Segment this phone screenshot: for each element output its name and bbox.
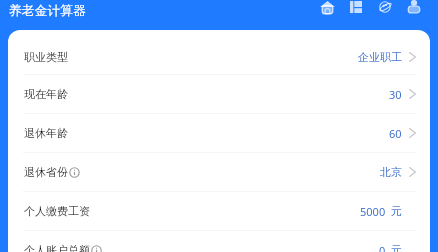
- button[interactable]: Profile: [403, 0, 425, 20]
- staticText: 退休年龄: [24, 126, 68, 140]
- button[interactable]: 职业类型: [8, 40, 430, 75]
- button[interactable]: 个人账户总额: [8, 231, 430, 252]
- button[interactable]: 个人缴费工资: [8, 192, 430, 231]
- staticText: 60: [389, 126, 402, 141]
- staticText: 现在年龄: [24, 87, 68, 101]
- button[interactable]: Home: [316, 0, 338, 20]
- staticText: 养老金计算器: [9, 3, 86, 19]
- staticText: 个人账户总额: [24, 243, 90, 252]
- staticText: 职业类型: [24, 50, 68, 64]
- button[interactable]: Dashboard: [345, 0, 367, 20]
- button[interactable]: 退休省份: [8, 153, 430, 192]
- staticText: 30: [389, 87, 402, 102]
- staticText: 个人缴费工资: [24, 204, 90, 218]
- staticText: 元: [391, 243, 402, 252]
- staticText: 企业职工: [358, 50, 402, 64]
- staticText: 0: [379, 243, 386, 252]
- staticText: 退休省份: [24, 165, 68, 179]
- button[interactable]: 现在年龄: [8, 75, 430, 114]
- staticText: 北京: [380, 165, 402, 179]
- staticText: 元: [391, 204, 402, 218]
- button[interactable]: Explore: [374, 0, 396, 20]
- staticText: 5000: [360, 204, 386, 219]
- button[interactable]: 退休年龄: [8, 114, 430, 153]
